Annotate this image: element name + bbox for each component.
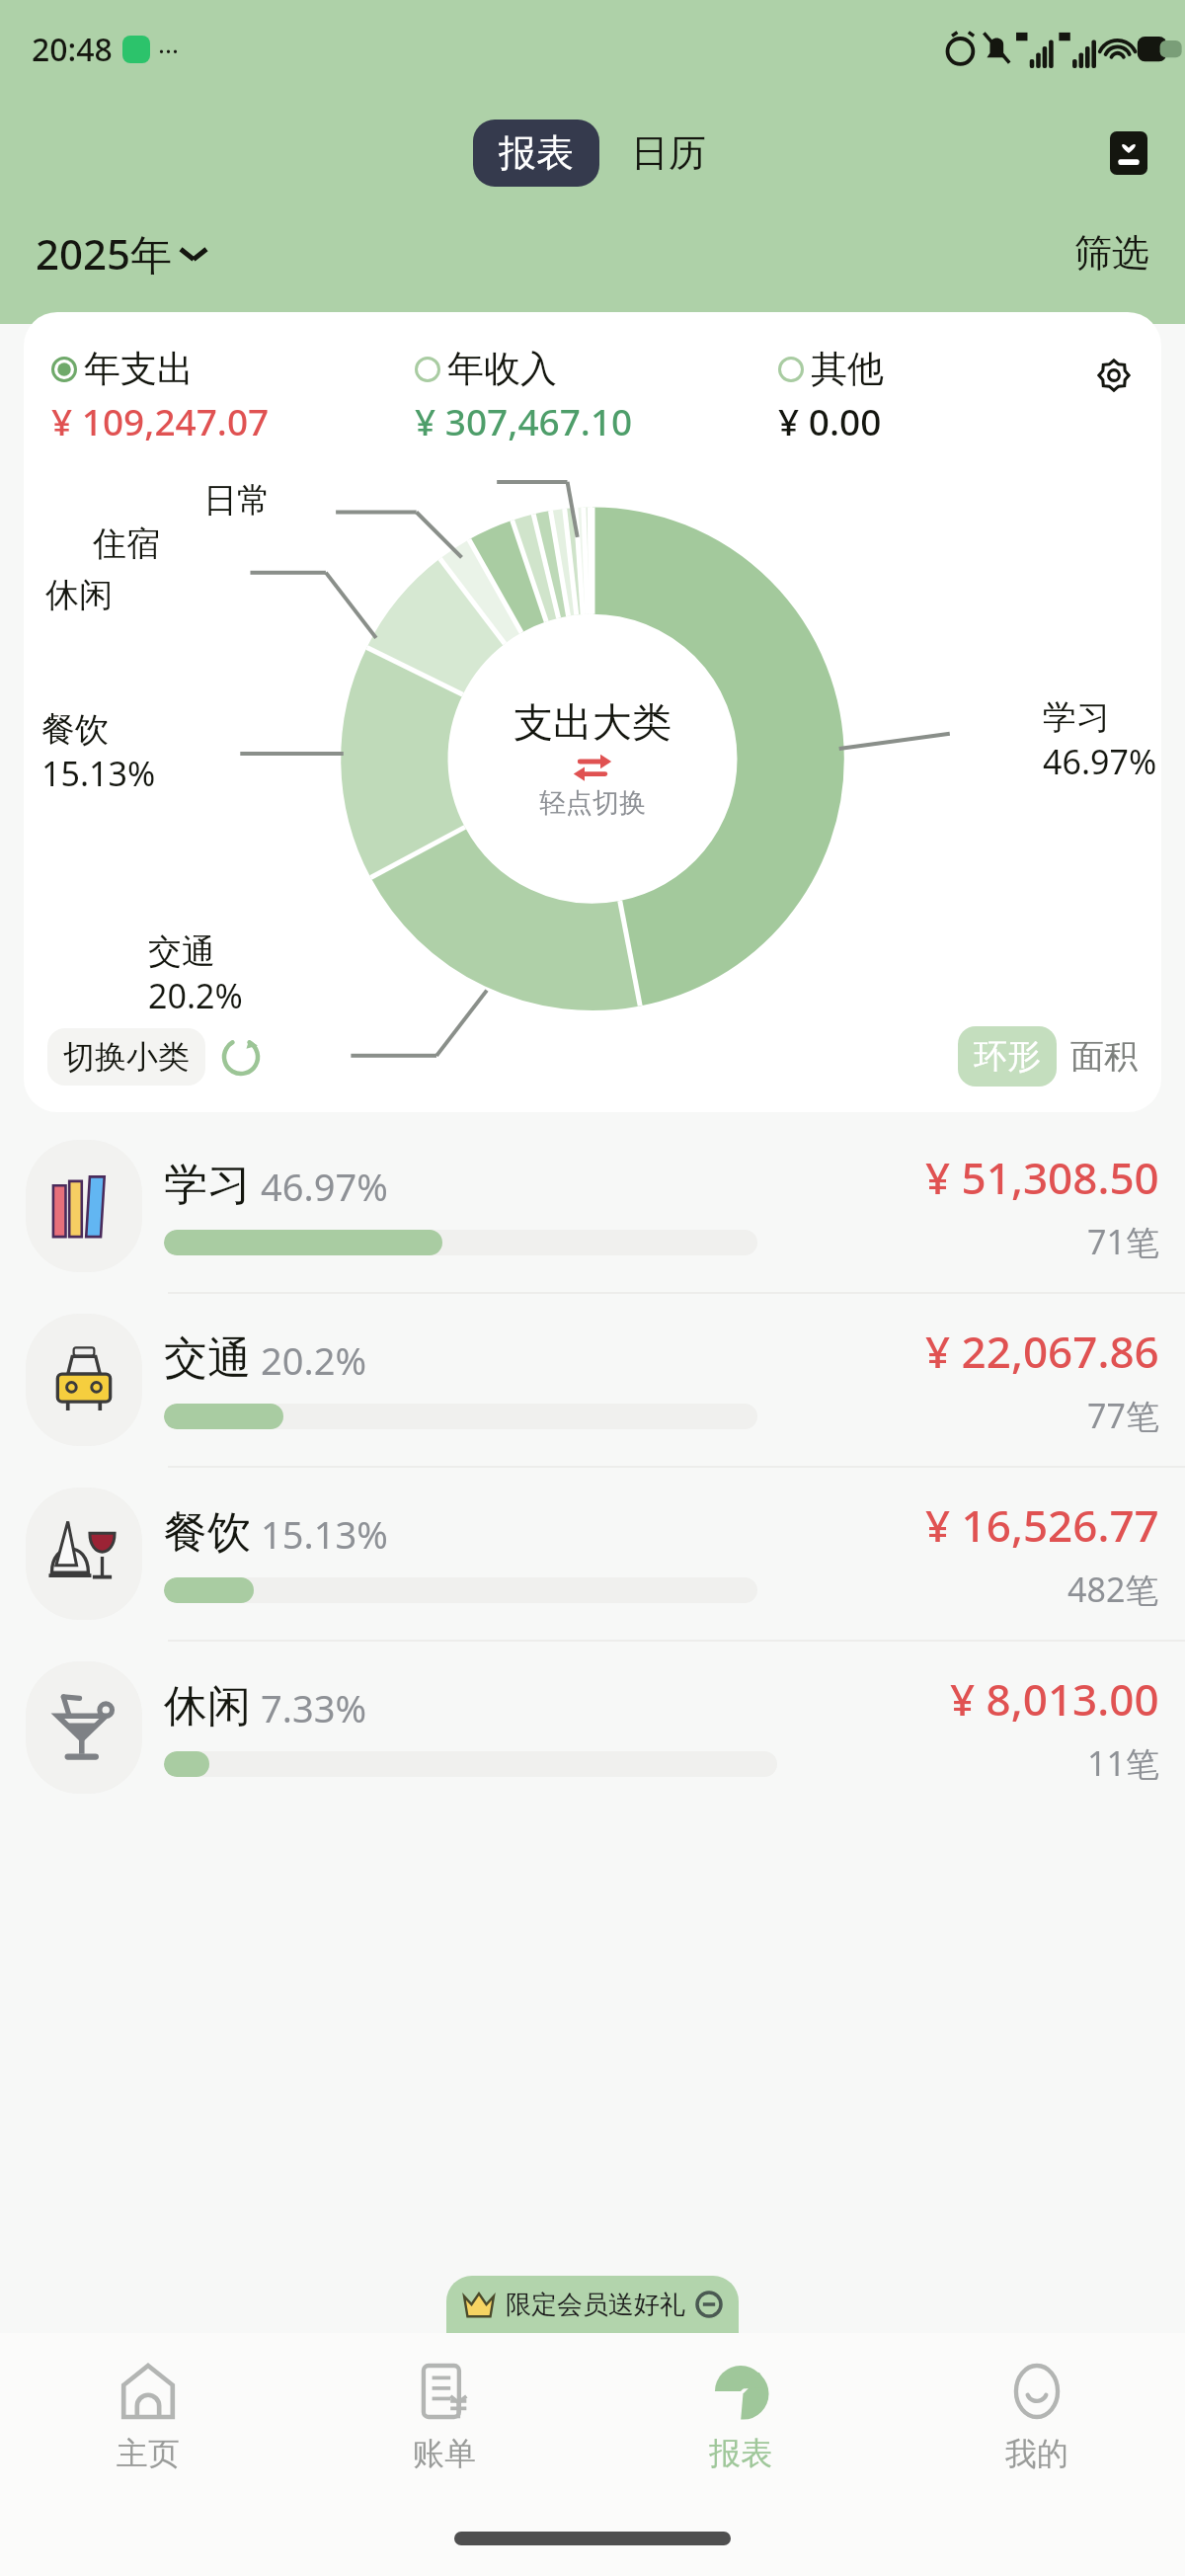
button[interactable]: 环形	[958, 1026, 1057, 1087]
staticText: 77笔	[1087, 1393, 1159, 1438]
button[interactable]: 账单	[296, 2333, 592, 2501]
staticText: 主页	[117, 2434, 180, 2473]
button[interactable]: 切换小类	[47, 1028, 205, 1086]
button[interactable]: Settings	[1088, 350, 1140, 401]
button[interactable]: 筛选	[1074, 229, 1149, 277]
staticText: 20.2%	[261, 1334, 366, 1386]
button[interactable]: 年收入	[415, 346, 778, 445]
staticText: 账单	[413, 2434, 476, 2473]
staticText: 面积	[1070, 1035, 1138, 1078]
button[interactable]: Bookmark	[1102, 126, 1155, 180]
button[interactable]: 支出大类	[513, 697, 671, 820]
staticText: 15.13%	[41, 751, 156, 796]
button[interactable]: 2025年	[36, 225, 206, 282]
staticText: 15.13%	[261, 1508, 388, 1560]
staticText: 报表	[709, 2434, 772, 2473]
staticText: 71笔	[1087, 1219, 1159, 1264]
button[interactable]: 餐饮	[0, 1468, 1185, 1640]
staticText: ¥ 109,247.07	[51, 396, 270, 445]
button[interactable]: 面积	[1070, 1026, 1138, 1087]
staticText: 日历	[631, 129, 706, 177]
staticText: 报表	[499, 129, 574, 177]
button[interactable]: 日历	[625, 120, 712, 187]
staticText: 休闲	[45, 574, 113, 616]
button[interactable]: 主页	[0, 2333, 296, 2501]
staticText: 年支出	[84, 346, 194, 392]
staticText: 46.97%	[261, 1161, 388, 1212]
staticText: 休闲	[164, 1679, 251, 1733]
staticText: ¥ 0.00	[778, 396, 882, 445]
staticText: 交通	[148, 930, 215, 973]
staticText: 我的	[1005, 2434, 1068, 2473]
staticText: 46.97%	[1043, 739, 1157, 784]
staticText: 年收入	[447, 346, 557, 392]
button[interactable]: 年支出	[51, 346, 415, 445]
staticText: 交通	[164, 1331, 251, 1386]
staticText: 餐饮	[41, 708, 109, 751]
button[interactable]: Refresh	[219, 1035, 263, 1079]
staticText: 支出大类	[513, 697, 671, 747]
button[interactable]: 休闲	[0, 1642, 1185, 1813]
staticText: 20.2%	[148, 973, 243, 1018]
button[interactable]: 报表	[473, 120, 599, 187]
staticText: 学习	[1043, 696, 1110, 739]
staticText: 限定会员送好礼	[506, 2289, 685, 2321]
staticText: 11笔	[1087, 1740, 1159, 1786]
staticText: ¥ 22,067.86	[925, 1322, 1159, 1381]
staticText: 住宿	[93, 523, 160, 565]
button[interactable]: 我的	[889, 2333, 1185, 2501]
staticText: ¥ 51,308.50	[925, 1148, 1159, 1207]
staticText: 7.33%	[261, 1682, 366, 1733]
button[interactable]: 报表	[592, 2333, 889, 2501]
staticText: 其他	[811, 346, 884, 392]
staticText: 学习	[164, 1158, 251, 1212]
staticText: 环形	[974, 1035, 1041, 1078]
staticText: ···	[158, 33, 179, 67]
staticText: ¥ 16,526.77	[925, 1495, 1159, 1555]
staticText: 482笔	[1067, 1567, 1159, 1612]
staticText: 轻点切换	[539, 786, 646, 820]
staticText: 切换小类	[63, 1037, 190, 1077]
staticText: 2025年	[36, 225, 173, 282]
staticText: 20:48	[32, 28, 113, 71]
button[interactable]: 其他	[778, 346, 1072, 445]
staticText: ¥ 307,467.10	[415, 396, 633, 445]
button[interactable]: 交通	[0, 1294, 1185, 1466]
staticText: 日常	[203, 479, 271, 522]
button[interactable]: 学习	[0, 1120, 1185, 1292]
button[interactable]: 限定会员送好礼	[446, 2276, 739, 2333]
staticText: ¥ 8,013.00	[950, 1669, 1159, 1729]
staticText: 筛选	[1074, 229, 1149, 277]
staticText: 餐饮	[164, 1505, 251, 1560]
